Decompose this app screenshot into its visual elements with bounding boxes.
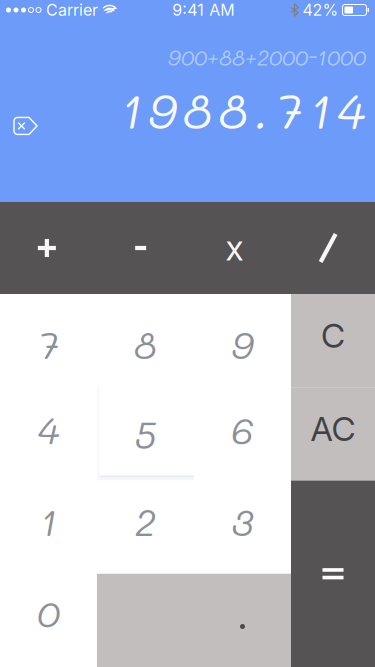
staticText: 1 [40,497,57,545]
button[interactable]: Multiply [187,202,281,294]
button[interactable]: AC [291,387,375,480]
staticText: 1 [309,79,330,141]
button[interactable]: Decimal point [194,574,291,667]
staticText: 9 [231,320,253,368]
staticText: AC [310,409,355,449]
button[interactable]: C [291,294,375,387]
button[interactable]: 3 [194,480,291,574]
staticText: 8 [219,79,248,141]
button[interactable]: 6 [194,387,291,480]
staticText: 5 [134,410,156,458]
staticText: 3 [231,497,253,545]
button[interactable]: 2 [97,480,194,574]
staticText: 4 [337,79,365,141]
staticText: Carrier [46,0,98,20]
staticText: 42% [302,0,338,20]
button[interactable]: Minus [94,202,188,294]
staticText: . [255,79,269,141]
staticText: x [225,227,243,269]
button[interactable]: 1 [0,480,97,574]
staticText: 2 [135,497,156,545]
staticText: 8 [134,320,157,368]
staticText: 9:41 AM [172,0,234,20]
button[interactable]: 5 [97,387,194,480]
staticText: 7 [275,79,302,141]
staticText: 9 [148,79,176,141]
button[interactable]: Equals [291,480,375,667]
staticText: 900+88+2000-1000 [168,43,366,71]
button[interactable]: 8 [97,294,194,387]
button[interactable]: Divide [281,202,375,294]
staticText: 0 [37,588,60,637]
button[interactable]: 0 [0,574,97,667]
staticText: 4 [37,405,59,454]
staticText: C [321,315,345,356]
staticText: 8 [183,79,212,141]
staticText: 6 [231,405,254,454]
staticText: 7 [38,320,59,368]
button[interactable]: Plus [0,202,94,294]
staticText: 1 [120,79,141,141]
button[interactable]: 9 [194,294,291,387]
button[interactable]: 4 [0,387,97,480]
button[interactable]: 7 [0,294,97,387]
button[interactable]: Delete [14,117,37,134]
